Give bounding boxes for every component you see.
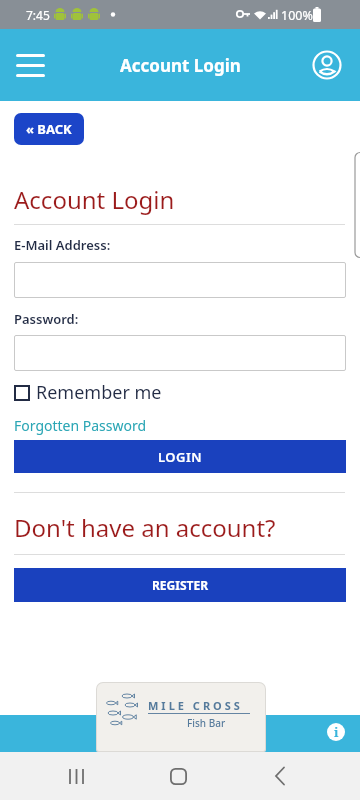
button[interactable] [14, 335, 346, 371]
button[interactable] [8, 43, 52, 87]
staticText: i [334, 723, 339, 741]
button[interactable] [258, 754, 302, 798]
staticText: Password: [14, 310, 79, 328]
button[interactable] [306, 44, 348, 86]
staticText: « BACK [26, 120, 72, 138]
staticText: 100% [281, 7, 313, 24]
staticText: REGISTER [152, 577, 209, 593]
button[interactable]: LOGIN [14, 440, 346, 473]
staticText: LOGIN [158, 448, 203, 466]
button[interactable]: REGISTER [14, 568, 346, 602]
staticText: MILE CROSS [148, 698, 243, 713]
staticText: 7:45 [26, 7, 50, 23]
button[interactable]: « BACK [14, 113, 84, 145]
button[interactable]: i [327, 723, 345, 741]
staticText: Remember me [36, 380, 162, 405]
button[interactable] [14, 262, 346, 298]
button[interactable] [156, 754, 200, 798]
button[interactable]: Remember me [14, 380, 162, 405]
staticText: E-Mail Address: [14, 236, 111, 254]
staticText: Fish Bar [187, 716, 226, 730]
button[interactable] [55, 754, 99, 798]
button[interactable]: Forgotten Password [14, 416, 147, 435]
staticText: Account Login [120, 54, 241, 77]
staticText: Don't have an account? [14, 511, 276, 544]
staticText: Account Login [14, 183, 175, 216]
